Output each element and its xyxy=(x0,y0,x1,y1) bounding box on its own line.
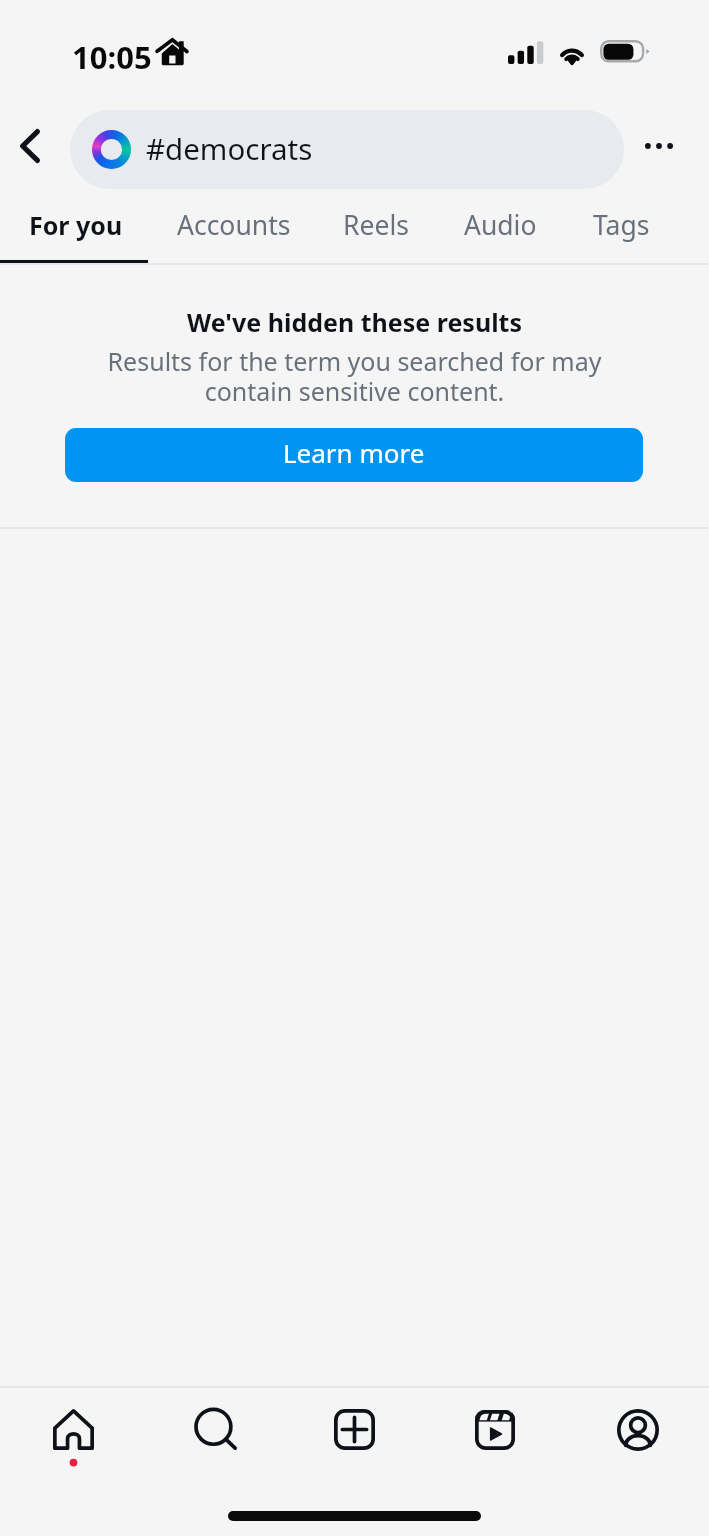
staticText: Results for the term you searched for ma… xyxy=(80,344,629,409)
button[interactable]: For you xyxy=(0,196,151,263)
button[interactable]: Reels xyxy=(316,196,436,263)
staticText: #democrats xyxy=(146,128,313,168)
button[interactable]: Reels xyxy=(425,1387,567,1472)
button[interactable]: Tags xyxy=(564,196,679,263)
staticText: Reels xyxy=(343,207,409,243)
staticText: Learn more xyxy=(283,435,425,470)
button[interactable]: Audio xyxy=(436,196,564,263)
button[interactable]: Home xyxy=(0,1387,141,1472)
button[interactable]: Learn more xyxy=(65,428,643,482)
button[interactable]: Back xyxy=(0,110,62,189)
button[interactable]: More options xyxy=(628,110,709,189)
button[interactable]: Search xyxy=(141,1387,283,1472)
staticText: We've hidden these results xyxy=(0,305,709,339)
staticText: Accounts xyxy=(177,207,291,243)
staticText: 10:05 xyxy=(72,36,152,78)
staticText: For you xyxy=(29,208,123,242)
staticText: Audio xyxy=(464,207,537,243)
staticText: Tags xyxy=(593,207,650,243)
button[interactable]: Profile xyxy=(567,1387,709,1472)
button[interactable]: Create xyxy=(283,1387,425,1472)
button[interactable]: #democrats xyxy=(70,110,624,189)
button[interactable]: Accounts xyxy=(151,196,316,263)
